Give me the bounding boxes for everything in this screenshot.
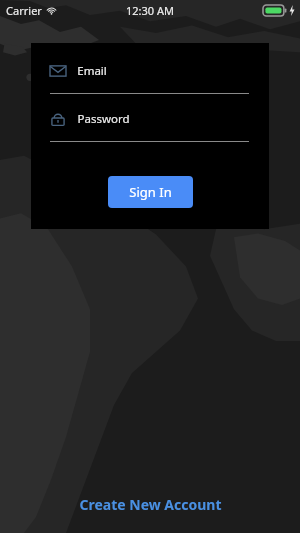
staticText: Email <box>77 63 107 79</box>
button[interactable]: Sign In <box>108 176 193 208</box>
staticText: Create New Account <box>79 495 222 514</box>
other: Password <box>50 111 66 127</box>
staticText: Password <box>77 111 130 127</box>
button[interactable]: Email <box>50 63 249 94</box>
staticText: Sign In <box>129 183 172 201</box>
button[interactable]: Password <box>50 111 249 142</box>
staticText: 12:30 AM <box>126 3 174 18</box>
button[interactable]: Create New Account <box>0 489 300 519</box>
staticText: Carrier <box>6 3 42 18</box>
other: Email <box>50 63 66 79</box>
